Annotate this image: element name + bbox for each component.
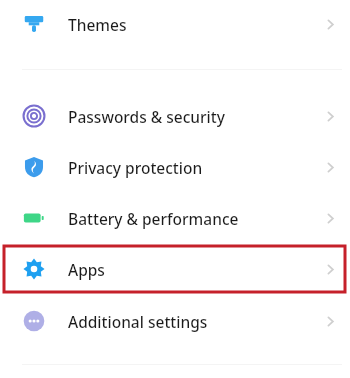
staticText: Battery & performance xyxy=(68,208,310,229)
button[interactable]: Passwords & security xyxy=(0,92,350,140)
button[interactable]: Battery & performance xyxy=(0,194,350,242)
button[interactable]: Privacy protection xyxy=(0,143,350,191)
button[interactable]: Apps xyxy=(0,245,350,293)
button[interactable]: Additional settings xyxy=(0,297,350,345)
staticText: Apps xyxy=(68,259,310,280)
staticText: Additional settings xyxy=(68,311,310,332)
other: Apps highlighted xyxy=(4,246,345,292)
staticText: Passwords & security xyxy=(68,106,310,127)
staticText: Themes xyxy=(68,14,310,35)
staticText: Privacy protection xyxy=(68,157,310,178)
button[interactable]: Themes xyxy=(0,0,350,48)
